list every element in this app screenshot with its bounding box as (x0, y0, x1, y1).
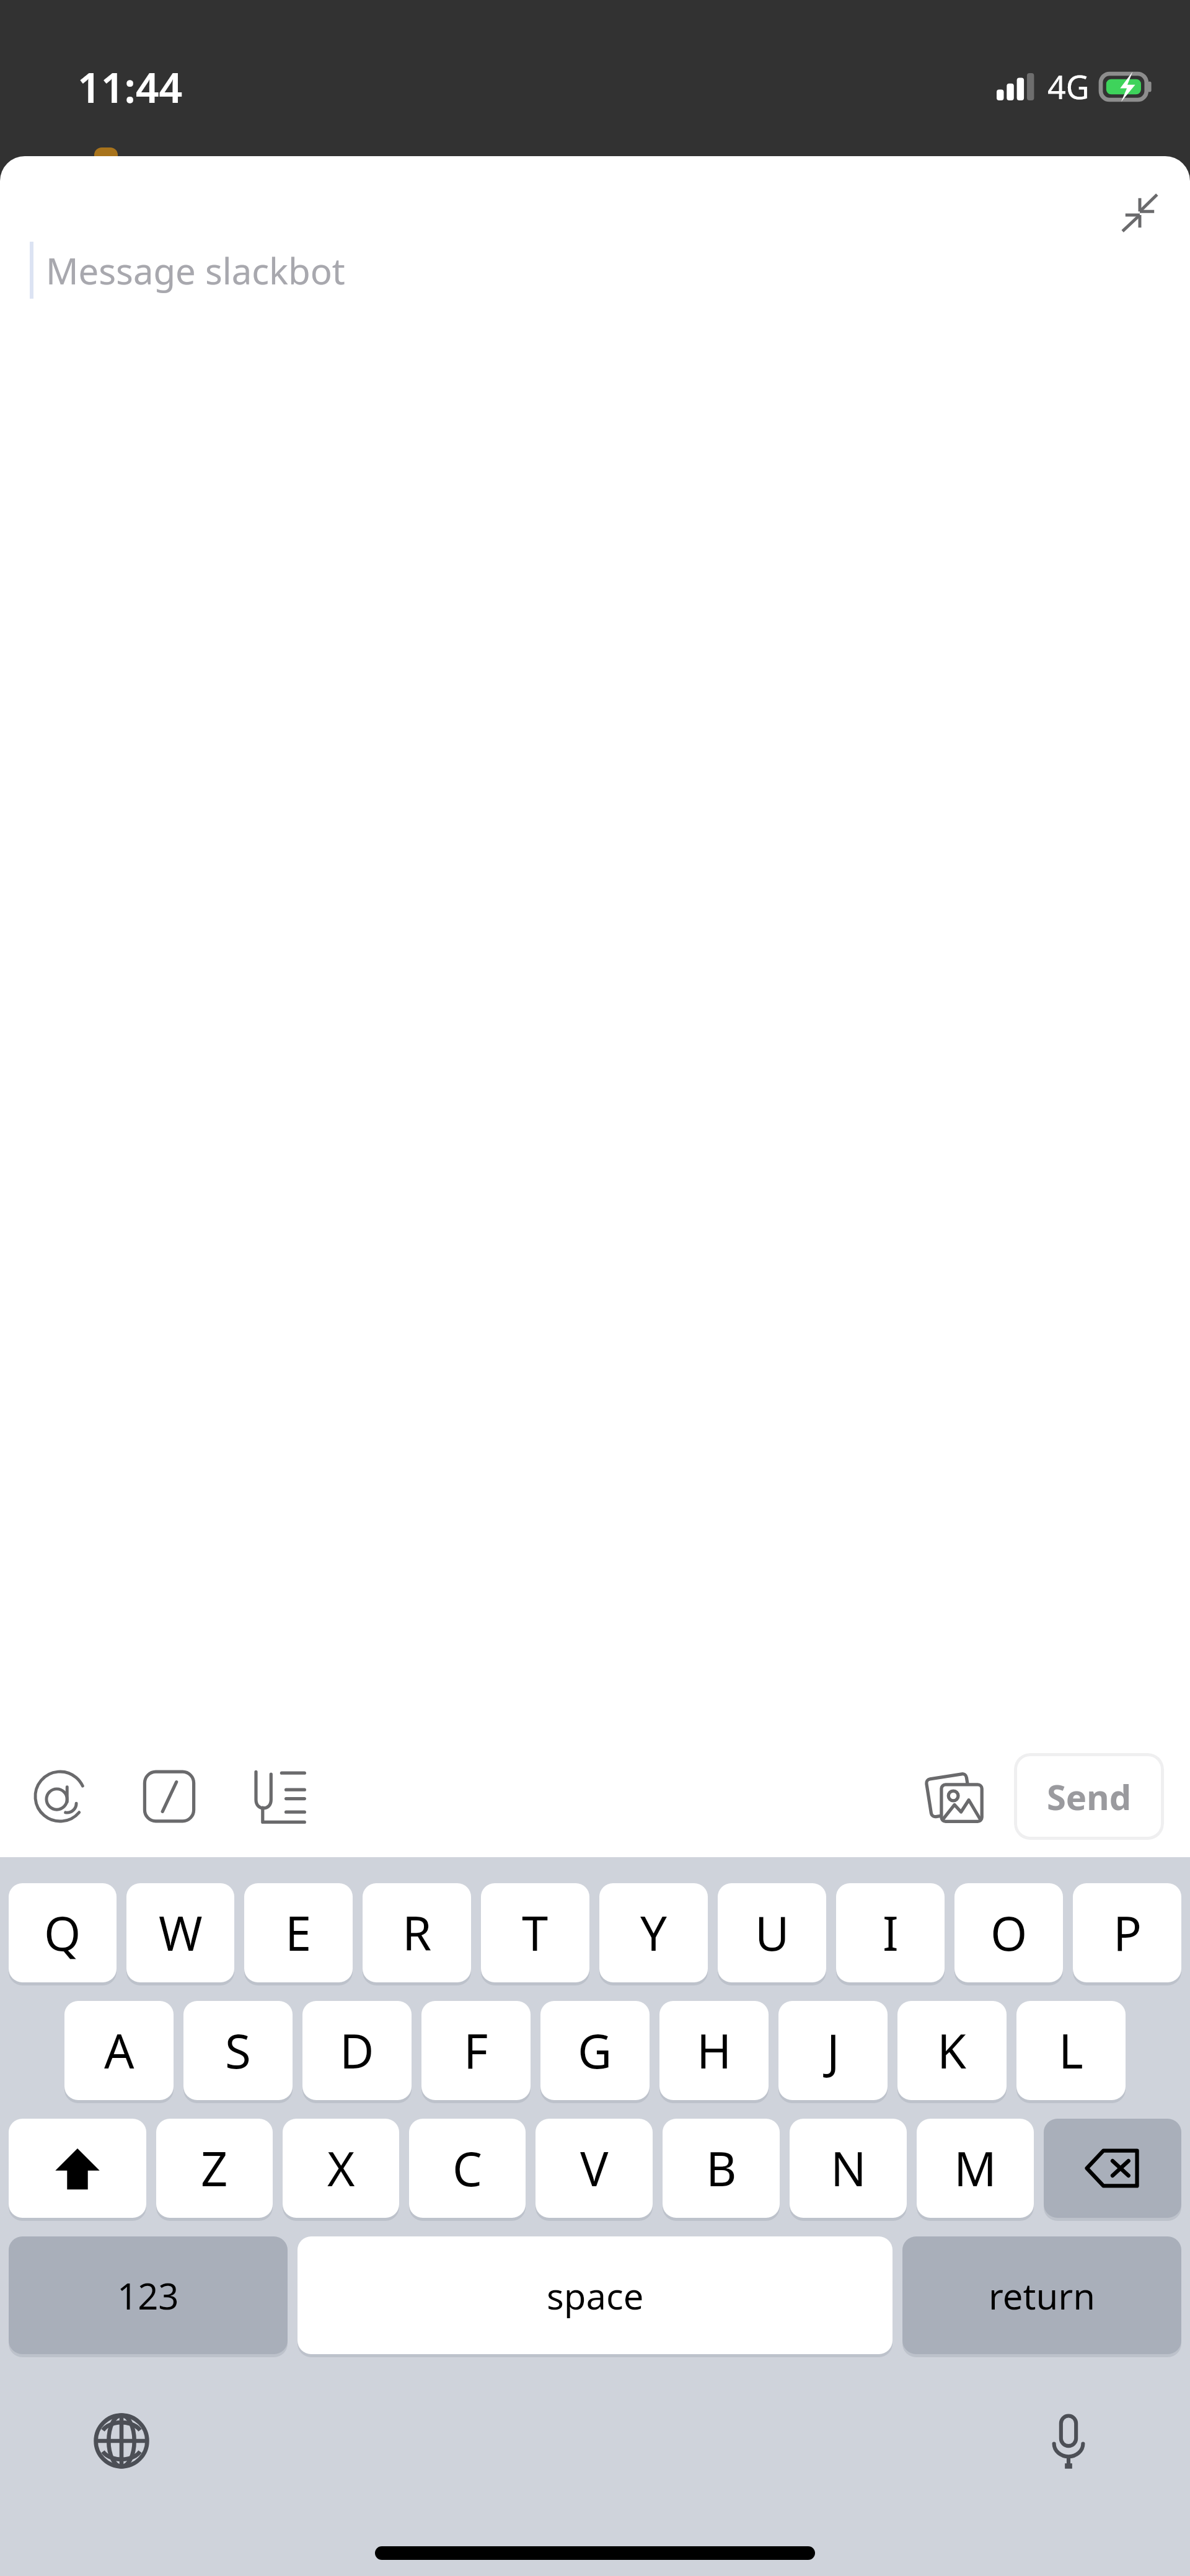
staticText: Z (201, 2136, 228, 2200)
staticText: F (464, 2018, 488, 2083)
staticText: J (827, 2018, 840, 2083)
button[interactable]: B (663, 2119, 780, 2218)
button[interactable]: H (659, 2001, 769, 2100)
staticText: K (937, 2018, 967, 2083)
button[interactable]: P (1073, 1883, 1181, 1982)
button[interactable]: D (302, 2001, 412, 2100)
button[interactable]: A (64, 2001, 174, 2100)
staticText: space (547, 2271, 644, 2320)
button[interactable]: Z (156, 2119, 273, 2218)
button[interactable]: Mention someone (17, 1754, 103, 1839)
button[interactable]: 123 (9, 2236, 288, 2354)
button[interactable]: S (183, 2001, 293, 2100)
button[interactable]: W (126, 1883, 234, 1982)
button[interactable]: Collapse (1106, 178, 1174, 247)
button[interactable]: T (481, 1883, 589, 1982)
staticText: A (104, 2018, 134, 2083)
button[interactable]: U (718, 1883, 826, 1982)
button[interactable]: return (902, 2236, 1181, 2354)
staticText: G (578, 2018, 612, 2083)
button[interactable]: K (897, 2001, 1007, 2100)
button[interactable]: Shift (9, 2119, 146, 2218)
button[interactable]: L (1016, 2001, 1126, 2100)
button[interactable]: I (836, 1883, 945, 1982)
staticText: W (159, 1901, 203, 1965)
staticText: B (706, 2136, 737, 2200)
staticText: Y (640, 1901, 668, 1965)
button[interactable]: N (790, 2119, 907, 2218)
staticText: S (225, 2018, 251, 2083)
staticText: N (831, 2136, 866, 2200)
staticText: M (954, 2136, 997, 2200)
staticText: Q (44, 1901, 81, 1965)
button[interactable]: Slash command (126, 1754, 212, 1839)
button[interactable]: V (535, 2119, 653, 2218)
button[interactable]: Photos (912, 1754, 998, 1839)
staticText: P (1113, 1901, 1142, 1965)
button[interactable]: J (778, 2001, 888, 2100)
button[interactable]: Dictate (1025, 2398, 1112, 2484)
staticText: T (522, 1901, 549, 1965)
staticText: H (697, 2018, 732, 2083)
button[interactable]: Backspace (1044, 2119, 1181, 2218)
button[interactable]: E (244, 1883, 353, 1982)
staticText: 4G (1047, 64, 1090, 108)
staticText: Send (1047, 1773, 1132, 1820)
staticText: 123 (117, 2271, 179, 2320)
staticText: E (285, 1901, 312, 1965)
button[interactable]: space (297, 2236, 892, 2354)
staticText: 11:44 (77, 59, 183, 115)
staticText: V (580, 2136, 609, 2200)
button[interactable]: Q (9, 1883, 117, 1982)
staticText: L (1059, 2018, 1083, 2083)
button[interactable]: M (917, 2119, 1034, 2218)
button[interactable]: Change keyboard (78, 2398, 165, 2484)
staticText: Message slackbot (46, 246, 345, 295)
staticText: I (883, 1901, 899, 1965)
button[interactable]: G (540, 2001, 650, 2100)
staticText: return (989, 2271, 1096, 2320)
staticText: X (327, 2136, 355, 2200)
button[interactable]: Send (1014, 1753, 1164, 1840)
button[interactable]: Y (599, 1883, 708, 1982)
staticText: O (990, 1901, 1028, 1965)
button[interactable]: X (283, 2119, 399, 2218)
staticText: C (452, 2136, 483, 2200)
button[interactable]: Attach file (236, 1754, 321, 1839)
button[interactable]: C (409, 2119, 526, 2218)
staticText: U (755, 1901, 790, 1965)
button[interactable]: O (954, 1883, 1063, 1982)
button[interactable]: R (363, 1883, 471, 1982)
staticText: D (340, 2018, 374, 2083)
staticText: R (402, 1901, 432, 1965)
button[interactable]: F (421, 2001, 531, 2100)
